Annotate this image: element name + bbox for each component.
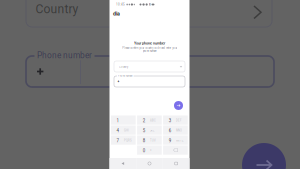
staticText: Country [119, 65, 128, 68]
button[interactable]: 2 [137, 115, 162, 125]
staticText: 10:45 [116, 3, 125, 6]
staticText: dia [113, 10, 120, 17]
staticText: + [150, 149, 152, 152]
staticText: 2 [143, 118, 145, 123]
staticText: 48 [149, 3, 151, 6]
staticText: WXYZ [176, 139, 184, 142]
button[interactable]: Recents [163, 158, 189, 169]
button[interactable]: 0 [137, 145, 162, 155]
staticText: GHI [124, 129, 129, 132]
staticText: Country [35, 2, 78, 16]
button[interactable]: 4 [111, 125, 136, 135]
button[interactable]: Continue [242, 143, 286, 169]
button[interactable]: 7 [111, 135, 136, 145]
button[interactable]: 5 [137, 125, 162, 135]
staticText: 4 [117, 128, 119, 133]
button[interactable]: 9 [163, 135, 188, 145]
button[interactable]: Country [0, 0, 246, 27]
staticText: JKL [150, 129, 154, 132]
staticText: + [117, 80, 119, 84]
staticText: TUV [150, 139, 156, 142]
button[interactable] [163, 145, 188, 155]
staticText: 5 [143, 128, 145, 133]
staticText: 3 [169, 118, 171, 123]
staticText: PQRS [124, 139, 132, 142]
staticText: 9 [169, 138, 171, 143]
staticText: ABC [150, 119, 156, 122]
button[interactable]: Home [136, 158, 163, 169]
staticText: 8 [143, 138, 145, 143]
staticText: MNO [176, 129, 182, 132]
staticText: 1 [117, 118, 119, 123]
staticText: 6 [169, 128, 171, 133]
staticText: 7 [117, 138, 119, 143]
button[interactable]: Back [109, 158, 136, 169]
staticText: DEF [176, 119, 181, 122]
staticText: 0 [143, 148, 145, 153]
staticText: Please confirm your country code and ent… [122, 46, 177, 53]
button[interactable]: 6 [163, 125, 188, 135]
staticText: Your phone number [134, 41, 165, 45]
button[interactable]: 8 [137, 135, 162, 145]
button[interactable]: Country [114, 61, 185, 72]
staticText: Phone number [37, 50, 92, 60]
staticText: Phone number [118, 74, 133, 77]
button[interactable]: Next [174, 101, 183, 110]
button[interactable]: 3 [163, 115, 188, 125]
button[interactable]: 1 [111, 115, 136, 125]
